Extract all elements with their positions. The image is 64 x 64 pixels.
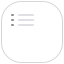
button[interactable]: List row: [11, 19, 34, 21]
button[interactable]: List row: [11, 14, 34, 16]
button[interactable]: List row: [11, 24, 34, 26]
